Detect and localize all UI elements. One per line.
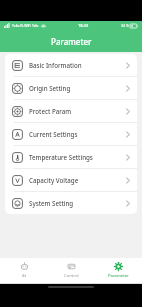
button[interactable]: Origin Setting [5, 77, 137, 99]
staticText: System Setting [29, 199, 74, 207]
button[interactable]: Capacity Voltage [5, 169, 137, 191]
button[interactable]: System Setting [5, 192, 137, 214]
staticText: AI [22, 273, 27, 279]
staticText: Parameter [108, 273, 129, 279]
staticText: 18:33 [78, 23, 89, 28]
button[interactable]: Basic Information [5, 54, 137, 76]
staticText: Control [64, 273, 79, 279]
staticText: Basic Information [29, 61, 82, 69]
button[interactable]: Current Settings [5, 123, 137, 145]
staticText: Origin Setting [29, 84, 71, 92]
button[interactable]: Control [48, 258, 95, 283]
button[interactable]: AI [0, 258, 48, 283]
staticText: Current Settings [29, 130, 78, 138]
staticText: Temperature Settings [29, 153, 93, 161]
button[interactable]: Parameter [95, 258, 142, 283]
button[interactable]: Temperature Settings [5, 146, 137, 168]
staticText: Protect Param [29, 107, 72, 115]
staticText: 34 % [121, 23, 129, 28]
staticText: Telia N-WiFi Tele [12, 23, 39, 28]
button[interactable]: Protect Param [5, 100, 137, 122]
staticText: Parameter [51, 36, 92, 47]
staticText: Capacity Voltage [29, 176, 79, 184]
